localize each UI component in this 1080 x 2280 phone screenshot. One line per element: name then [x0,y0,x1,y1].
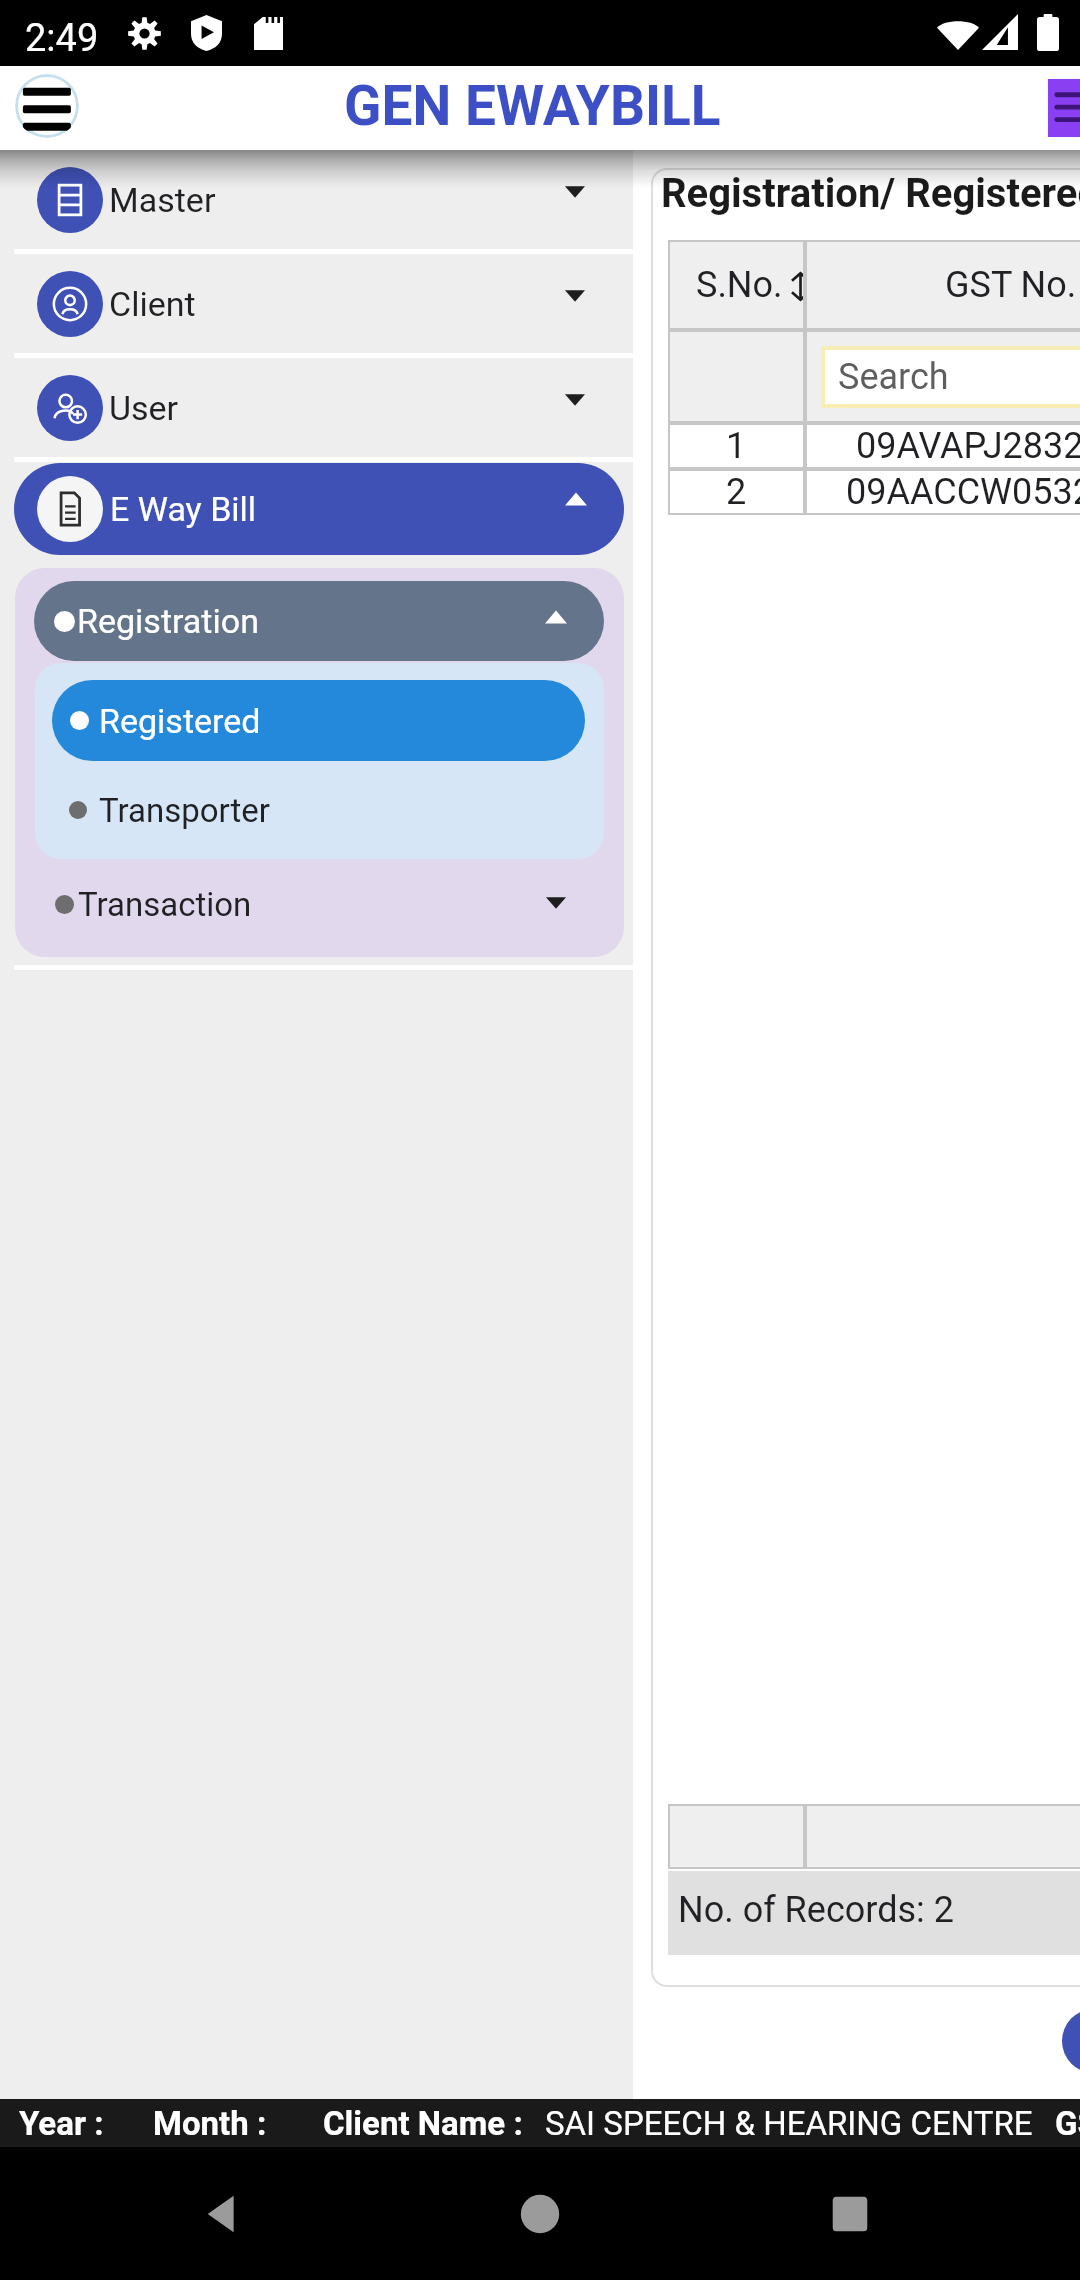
staticText: 09AVAPJ2832F1Z5 [856,425,1080,467]
staticText: No. of Records: 2 [678,1889,954,1931]
button[interactable]: Client [0,254,633,353]
button[interactable]: Transaction [55,859,566,950]
button[interactable]: More options [1048,79,1080,137]
button[interactable]: Master [0,150,633,249]
button[interactable]: Add record [1062,2009,1080,2073]
button[interactable]: Back [186,2176,262,2252]
button[interactable]: Search [821,346,1080,408]
staticText: Search [838,356,949,398]
staticText: Client Name : [323,2104,523,2143]
staticText: Master [109,180,216,220]
staticText: Month : [153,2104,267,2143]
staticText: Year : [19,2104,104,2143]
staticText: 2 [726,471,747,513]
staticText: SAI SPEECH & HEARING CENTRE [545,2104,1033,2143]
button[interactable]: Registered [52,680,585,761]
staticText: GS [1055,2104,1080,2143]
button[interactable]: Transporter [69,761,604,859]
button[interactable]: Open navigation drawer [15,74,79,138]
staticText: Registration [77,601,259,641]
button[interactable]: Home [502,2176,578,2252]
button[interactable]: E Way Bill [14,463,624,555]
staticText: Registration/ Registered [661,170,1080,217]
staticText: Registered [99,701,261,741]
staticText: Transporter [99,791,271,830]
staticText: GST No. [945,264,1077,306]
staticText: GEN EWAYBILL [344,74,721,138]
staticText: User [109,388,179,428]
staticText: Client [109,284,196,324]
staticText: 1 [726,425,747,467]
button[interactable]: Registration [34,581,604,661]
staticText: Transaction [78,885,252,924]
staticText: 2:49 [25,16,99,61]
staticText: E Way Bill [110,489,257,529]
button[interactable]: User [0,358,633,457]
staticText: 09AACCW0532L1ZZ [846,471,1080,513]
staticText: S.No. [696,264,783,306]
button[interactable]: Recent apps [812,2176,888,2252]
